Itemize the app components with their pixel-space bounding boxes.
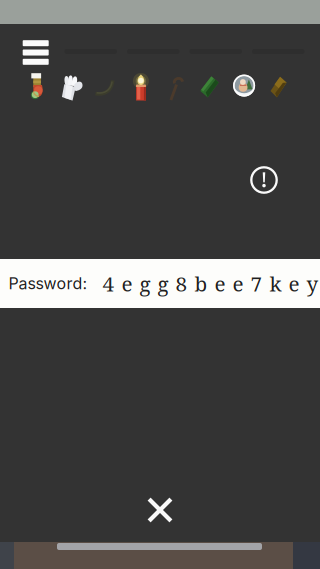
staticText: 4egg8bee7key xyxy=(102,269,318,297)
button[interactable]: Candy cane xyxy=(162,71,188,105)
button[interactable]: Hint xyxy=(241,157,287,203)
button[interactable]: Green pad xyxy=(197,71,223,105)
button[interactable]: Glove xyxy=(59,71,85,105)
button[interactable]: Stocking xyxy=(25,71,51,105)
staticText: Password: xyxy=(8,274,87,293)
button[interactable]: Close xyxy=(135,485,184,534)
button[interactable]: Twig xyxy=(93,71,119,105)
button[interactable]: Snow globe xyxy=(231,71,257,105)
button[interactable]: Candle xyxy=(128,71,154,105)
button[interactable]: Menu xyxy=(10,32,62,72)
button[interactable]: Amber block xyxy=(265,71,291,105)
